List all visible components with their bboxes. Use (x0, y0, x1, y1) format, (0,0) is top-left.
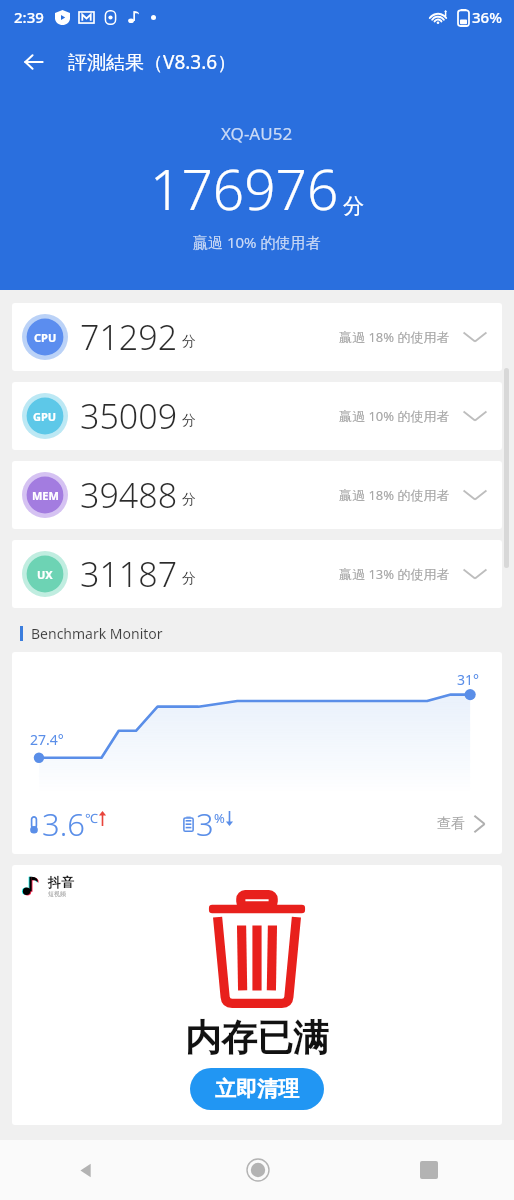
staticText: 分 (182, 491, 196, 509)
staticText: 分 (182, 333, 196, 351)
staticText: ℃ (85, 809, 98, 827)
staticText: 贏過 10% 的使用者 (339, 407, 450, 425)
staticText: XQ-AU52 (221, 122, 293, 145)
staticText: 抖音 (48, 874, 74, 890)
staticText: 分 (182, 412, 196, 430)
staticText: GPU (33, 409, 57, 424)
button[interactable]: Back (0, 1140, 172, 1200)
staticText: 贏過 10% 的使用者 (193, 232, 321, 252)
staticText: 評測結果（V8.3.6） (68, 49, 237, 75)
staticText: 71292 (80, 314, 178, 360)
staticText: 2:39 (14, 7, 44, 27)
staticText: 36% (472, 7, 502, 27)
staticText: Benchmark Monitor (31, 624, 163, 643)
button[interactable]: GPU (12, 382, 502, 450)
button[interactable]: Home (172, 1140, 343, 1200)
staticText: 3.6 (42, 803, 85, 845)
staticText: CPU (34, 330, 57, 345)
staticText: 分 (343, 193, 364, 219)
staticText: MEM (32, 488, 59, 503)
staticText: 分 (182, 570, 196, 588)
staticText: 31187 (80, 551, 178, 597)
staticText: 3 (196, 803, 214, 845)
staticText: % (214, 809, 225, 827)
staticText: 贏過 13% 的使用者 (339, 565, 450, 583)
staticText: 39488 (80, 472, 178, 518)
staticText: 31° (457, 670, 480, 689)
staticText: 贏過 18% 的使用者 (339, 486, 450, 504)
staticText: 内存已满 (185, 1015, 329, 1060)
staticText: 短视频 (48, 890, 66, 898)
staticText: 176976 (150, 151, 339, 226)
button[interactable]: Recent apps (343, 1140, 514, 1200)
staticText: 35009 (80, 393, 178, 439)
staticText: 立即清理 (215, 1076, 299, 1102)
button[interactable]: MEM (12, 461, 502, 529)
button[interactable]: 抖音 (12, 865, 502, 1125)
button[interactable]: Back (10, 38, 58, 86)
button[interactable]: CPU (12, 303, 502, 371)
button[interactable]: UX (12, 540, 502, 608)
staticText: 27.4° (30, 730, 64, 749)
button[interactable]: 27.4° (12, 652, 502, 854)
staticText: UX (37, 567, 53, 582)
staticText: 贏過 18% 的使用者 (339, 328, 450, 346)
button[interactable]: 立即清理 (190, 1068, 324, 1110)
staticText: 查看 (437, 815, 465, 833)
